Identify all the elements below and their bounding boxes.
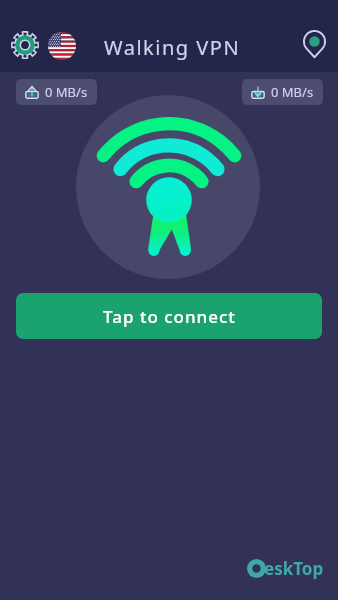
- staticText: Tap to connect: [103, 305, 236, 328]
- button[interactable]: Tap to connect: [16, 293, 322, 339]
- staticText: Walking VPN: [104, 34, 241, 61]
- staticText: 0 MB/s: [45, 83, 88, 101]
- button[interactable]: 0 MB/s: [242, 79, 323, 105]
- button[interactable]: Selected country: [45, 29, 79, 63]
- button[interactable]: Settings: [7, 27, 42, 62]
- staticText: 0 MB/s: [271, 83, 314, 101]
- staticText: eskTop: [264, 557, 324, 580]
- button[interactable]: 0 MB/s: [16, 79, 97, 105]
- button[interactable]: Choose location: [301, 29, 328, 60]
